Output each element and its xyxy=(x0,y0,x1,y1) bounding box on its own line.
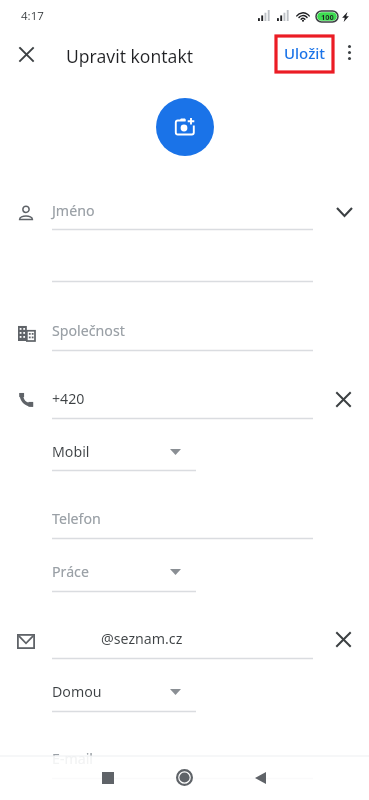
button[interactable]: Domů xyxy=(162,755,206,799)
staticText: Práce xyxy=(52,562,89,581)
button[interactable]: Jméno xyxy=(0,196,369,236)
staticText: Společnost xyxy=(52,321,125,340)
button[interactable]: +420 xyxy=(0,384,369,424)
button[interactable]: Další možnosti xyxy=(333,36,365,68)
staticText: +420 xyxy=(52,389,85,408)
button[interactable]: Vymazat xyxy=(327,383,359,415)
staticText: Uložit xyxy=(284,43,326,63)
button[interactable]: Vymazat xyxy=(327,623,359,655)
button[interactable]: Rozbalit pole jména xyxy=(328,196,360,228)
button[interactable]: Společnost xyxy=(0,316,369,356)
button[interactable]: Práce xyxy=(0,558,205,596)
button[interactable]: Domou xyxy=(0,678,205,716)
button[interactable]: Přehled xyxy=(86,756,130,800)
button[interactable]: Zpět xyxy=(238,756,282,800)
staticText: 4:17 xyxy=(21,8,44,24)
button[interactable]: Zavřít xyxy=(6,34,46,74)
staticText: Jméno xyxy=(52,201,95,220)
button[interactable]: Mobil xyxy=(0,437,205,475)
button[interactable]: Uložit xyxy=(276,38,333,68)
staticText: E-mail xyxy=(52,749,94,768)
staticText: 100 xyxy=(321,12,334,22)
staticText: Domou xyxy=(52,682,102,701)
staticText: @seznam.cz xyxy=(101,629,183,648)
staticText: Telefon xyxy=(52,509,101,528)
staticText: Upravit kontakt xyxy=(66,44,194,68)
button[interactable]: Přidat fotografii xyxy=(156,98,214,156)
button[interactable]: Telefon xyxy=(0,505,369,543)
button[interactable]: @seznam.cz xyxy=(0,624,369,664)
staticText: Mobil xyxy=(52,442,90,461)
